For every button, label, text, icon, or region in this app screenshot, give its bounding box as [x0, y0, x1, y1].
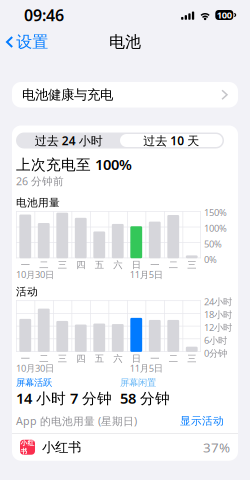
staticText: App 的电池用量 (星期日)	[16, 414, 137, 428]
button[interactable]: 设置	[0, 29, 48, 55]
staticText: 58 分钟	[120, 388, 170, 408]
staticText: 电池用量	[16, 196, 60, 209]
staticText: 11月5日	[130, 362, 163, 374]
staticText: 上次充电至 100%	[16, 154, 132, 174]
staticText: 18小时	[204, 308, 232, 321]
staticText: 一	[150, 353, 159, 364]
staticText: 三	[58, 353, 67, 364]
staticText: 三	[58, 259, 67, 271]
staticText: 100	[217, 9, 232, 21]
staticText: 50%	[204, 238, 222, 250]
button[interactable]: 过去 10 天	[120, 134, 222, 147]
staticText: 三	[187, 353, 196, 364]
button[interactable]: 电池健康与充电	[12, 82, 238, 107]
staticText: 10月30日	[16, 362, 54, 374]
staticText: 150%	[204, 206, 227, 219]
staticText: 屏幕闲置	[120, 377, 156, 388]
staticText: 二	[39, 353, 48, 364]
staticText: 日	[132, 259, 141, 271]
staticText: 日	[132, 353, 141, 364]
staticText: 小红书	[42, 439, 81, 455]
staticText: 五	[95, 259, 104, 271]
staticText: 过去 10 天	[143, 132, 199, 148]
staticText: 小红书	[20, 439, 34, 455]
staticText: 26 分钟前	[16, 174, 64, 188]
button[interactable]: 小红书	[12, 434, 238, 461]
staticText: 四	[76, 353, 85, 364]
staticText: 一	[21, 353, 30, 364]
staticText: 二	[169, 259, 178, 271]
staticText: 一	[150, 259, 159, 271]
staticText: 六	[113, 353, 122, 364]
staticText: 0分钟	[204, 347, 227, 359]
staticText: 活动	[16, 285, 38, 298]
staticText: 五	[95, 353, 104, 364]
staticText: 12小时	[204, 321, 232, 333]
staticText: 14 小时 7 分钟	[16, 388, 112, 408]
staticText: 电池	[109, 32, 141, 52]
staticText: 六	[113, 259, 122, 271]
staticText: 09:46	[24, 4, 64, 26]
staticText: 11月5日	[130, 268, 163, 281]
staticText: 10月30日	[16, 268, 54, 281]
staticText: 二	[169, 353, 178, 364]
staticText: 四	[76, 259, 85, 271]
staticText: 显示活动	[180, 414, 224, 427]
button[interactable]: 显示活动	[180, 414, 224, 427]
staticText: 过去 24 小时	[35, 132, 103, 148]
staticText: 0%	[204, 253, 217, 266]
staticText: 100%	[204, 222, 227, 234]
staticText: 二	[39, 259, 48, 271]
staticText: 24小时	[204, 295, 232, 308]
staticText: 三	[187, 259, 196, 271]
staticText: 37%	[203, 438, 230, 456]
staticText: 屏幕活跃	[16, 377, 52, 388]
staticText: 设置	[16, 32, 48, 52]
staticText: 6小时	[204, 334, 227, 346]
staticText: 电池健康与充电	[22, 87, 113, 103]
button[interactable]: 过去 24 小时	[17, 134, 120, 147]
staticText: 一	[21, 259, 30, 271]
